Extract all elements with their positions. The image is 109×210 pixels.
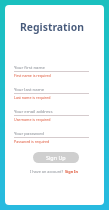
staticText: Last name is required — [14, 95, 51, 100]
staticText: Sign Up — [46, 154, 66, 161]
staticText: I have an account? — [30, 169, 65, 174]
staticText: Registration — [20, 20, 84, 34]
button[interactable]: Sign In — [65, 169, 79, 174]
button[interactable]: Sign Up — [33, 152, 79, 163]
staticText: Your first name — [14, 64, 45, 70]
staticText: Your last name — [14, 86, 45, 92]
staticText: Username is required — [14, 117, 51, 122]
staticText: Your password — [14, 130, 44, 136]
staticText: Password is required — [14, 139, 50, 144]
staticText: Your email address — [14, 108, 53, 114]
staticText: First name is required — [14, 73, 51, 78]
